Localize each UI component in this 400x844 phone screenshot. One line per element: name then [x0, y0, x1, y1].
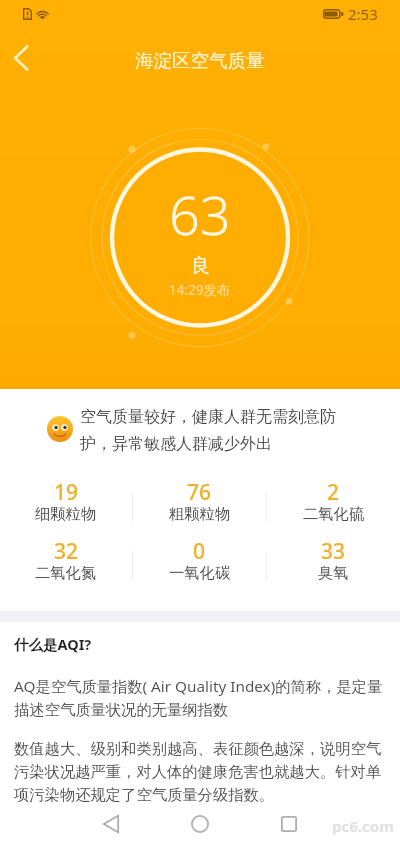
button[interactable]: Back: [1, 38, 41, 78]
staticText: 数值越大、级别和类别越高、表征颜色越深，说明空气污染状况越严重，对人体的健康危害…: [14, 739, 386, 805]
staticText: 33: [321, 537, 346, 566]
button[interactable]: 2: [267, 478, 400, 526]
staticText: 一氧化碳: [169, 563, 231, 582]
staticText: 32: [54, 537, 79, 566]
staticText: 0: [193, 537, 206, 566]
staticText: 2: [327, 478, 340, 507]
staticText: pc6.com: [332, 816, 394, 836]
staticText: 细颗粒物: [35, 504, 97, 523]
button[interactable]: 0: [133, 537, 266, 585]
staticText: 什么是AQI?: [14, 634, 92, 654]
staticText: 海淀区空气质量: [135, 49, 265, 72]
button[interactable]: 76: [133, 478, 266, 526]
staticText: 二氧化氮: [35, 563, 97, 582]
staticText: 19: [54, 478, 79, 507]
staticText: 粗颗粒物: [169, 504, 231, 523]
staticText: AQ是空气质量指数( Air Quality Index)的简称，是定量描述空气…: [14, 676, 386, 720]
button[interactable]: 32: [0, 537, 132, 585]
staticText: 63: [169, 177, 231, 251]
button[interactable]: Home: [178, 803, 222, 844]
staticText: 14:29发布: [169, 281, 231, 299]
button[interactable]: Recents: [267, 803, 311, 844]
staticText: 二氧化硫: [303, 504, 365, 523]
staticText: 良: [191, 254, 210, 278]
button[interactable]: 33: [267, 537, 400, 585]
staticText: 空气质量较好，健康人群无需刻意防护，异常敏感人群减少外出: [80, 407, 347, 454]
staticText: 76: [187, 478, 212, 507]
button[interactable]: 19: [0, 478, 132, 526]
staticText: 2:53: [348, 4, 378, 24]
button[interactable]: Back: [89, 803, 133, 844]
staticText: 臭氧: [318, 563, 349, 582]
